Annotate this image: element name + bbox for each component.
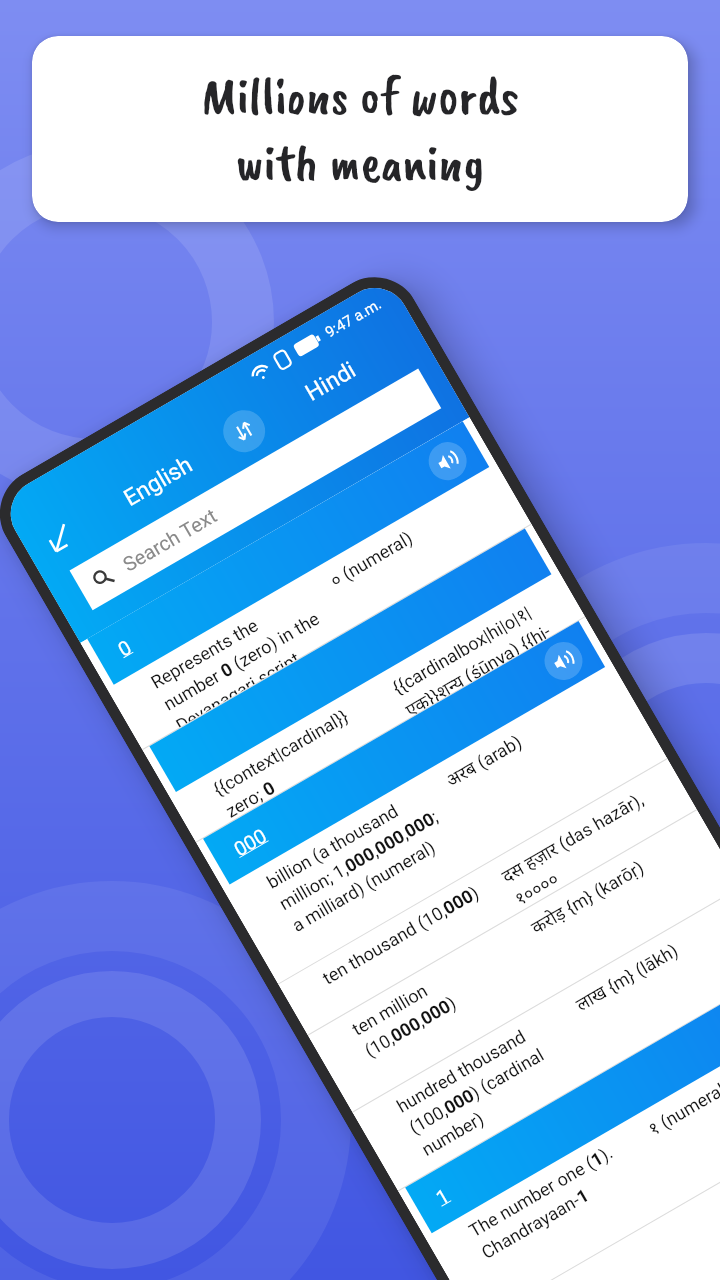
button[interactable]: English (79, 422, 238, 540)
staticText: English (119, 451, 197, 512)
staticText: लाख {m} (lākh) (571, 903, 720, 1017)
button[interactable]: hundred thousand (100,000) (cardinal num… (353, 887, 720, 1191)
button[interactable]: 000 (196, 617, 668, 985)
button[interactable]: 0 (80, 417, 532, 750)
button[interactable]: Play pronunciation (538, 635, 589, 687)
staticText: 1 (432, 1183, 454, 1209)
staticText: ten thousand (10,000) (319, 878, 488, 989)
button[interactable]: ten thousand (10,000) (278, 759, 697, 1036)
staticText: १ (numeral) चंद्रयान-1 (643, 1027, 720, 1141)
staticText: ten million (10,000,000) (348, 929, 531, 1061)
staticText: Millions of words with meaning (201, 62, 519, 196)
staticText: 9:47 a.m. (322, 295, 385, 342)
staticText: {{context|cardinal}} zero; 0 (209, 690, 391, 821)
staticText: hundred thousand (100,000) (cardinal num… (393, 1006, 588, 1160)
staticText: The number one (1). Chandrayaan-1 (465, 1131, 647, 1263)
button[interactable]: 1 (398, 966, 720, 1280)
staticText: billion (a thousand million; 1,000,000,0… (263, 782, 458, 936)
staticText: Search Text (119, 503, 221, 576)
staticText: Hindi (301, 356, 361, 407)
staticText: 0 (114, 635, 136, 661)
button[interactable]: ten million (10,000,000) (308, 810, 720, 1113)
staticText: अरब (arab) (441, 679, 613, 793)
staticText: ० (numeral) (325, 479, 497, 593)
button[interactable]: Hindi (251, 322, 410, 440)
staticText: Represents the number 0 (zero) in the De… (147, 582, 337, 728)
staticText: दस हज़ार (das hazār), १०००० (497, 775, 681, 910)
button[interactable]: Millions of words with meaning (32, 36, 688, 222)
staticText: {{cardinalbox|hi|o|१|एक}}शून्य (śūnya) {… (388, 586, 569, 717)
button[interactable]: Swap languages (215, 402, 273, 460)
staticText: करोड़ {m} (karōṛ) (526, 826, 698, 940)
button[interactable]: Back (18, 500, 102, 575)
button[interactable]: Play pronunciation (422, 435, 474, 487)
button[interactable]: Search Text (83, 375, 429, 602)
button[interactable]: {{context|cardinal}} zero; 0 (142, 524, 585, 843)
staticText: 000 (230, 824, 270, 860)
